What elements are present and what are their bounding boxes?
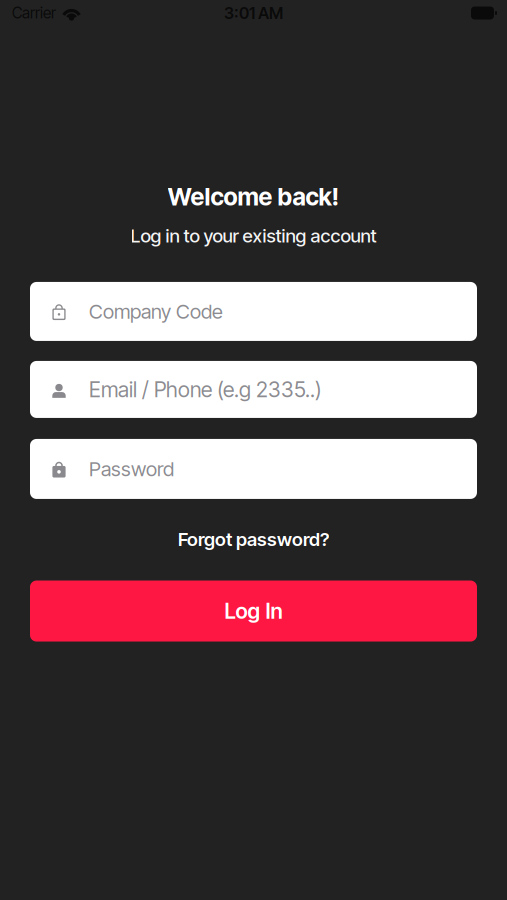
staticText: Email / Phone (e.g 2335..) [89,377,322,402]
staticText: Log in to your existing account [130,224,376,247]
staticText: Log In [224,598,282,624]
button[interactable]: Log In [30,580,477,641]
staticText: 3:01 AM [224,3,283,23]
staticText: Forgot password? [178,528,329,550]
button[interactable]: Password [30,439,477,499]
staticText: Company Code [89,299,223,323]
staticText: Password [89,457,174,481]
button[interactable]: Email / Phone (e.g 2335..) [30,361,477,418]
staticText: Welcome back! [167,182,339,211]
button[interactable]: Forgot password? [164,523,343,555]
button[interactable]: Company Code [30,282,477,341]
staticText: Carrier [12,4,56,22]
